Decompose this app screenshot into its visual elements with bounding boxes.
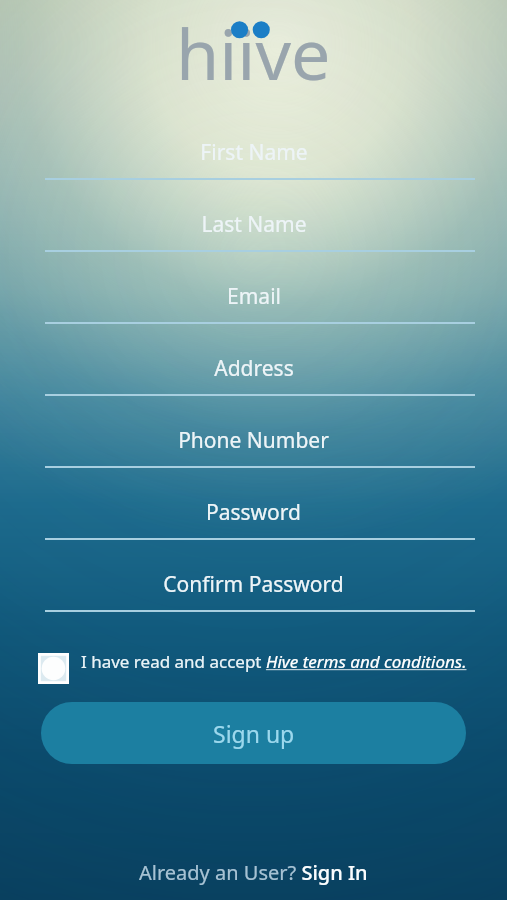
- button[interactable]: Address: [0, 342, 507, 414]
- staticText: Address: [214, 354, 294, 383]
- staticText: Confirm Password: [163, 570, 344, 599]
- other: Accept Hive terms and conditions: [38, 653, 69, 684]
- button[interactable]: Last Name: [0, 198, 507, 270]
- staticText: Last Name: [201, 210, 307, 239]
- button[interactable]: Confirm Password: [0, 558, 507, 630]
- button[interactable]: Sign up: [41, 702, 466, 764]
- staticText: Password: [206, 498, 301, 527]
- button[interactable]: Accept Hive terms and conditions: [38, 650, 477, 684]
- staticText: I have read and accept Hive terms and co…: [81, 650, 467, 673]
- staticText: hiive: [176, 5, 331, 100]
- button[interactable]: Phone Number: [0, 414, 507, 486]
- staticText: Already an User? Sign In: [139, 859, 368, 886]
- staticText: Sign up: [213, 718, 295, 749]
- button[interactable]: First Name: [0, 126, 507, 198]
- button[interactable]: Already an User? Sign In: [0, 859, 507, 900]
- staticText: First Name: [200, 138, 308, 167]
- staticText: Email: [227, 282, 281, 311]
- staticText: Phone Number: [178, 426, 329, 455]
- button[interactable]: Password: [0, 486, 507, 558]
- button[interactable]: Email: [0, 270, 507, 342]
